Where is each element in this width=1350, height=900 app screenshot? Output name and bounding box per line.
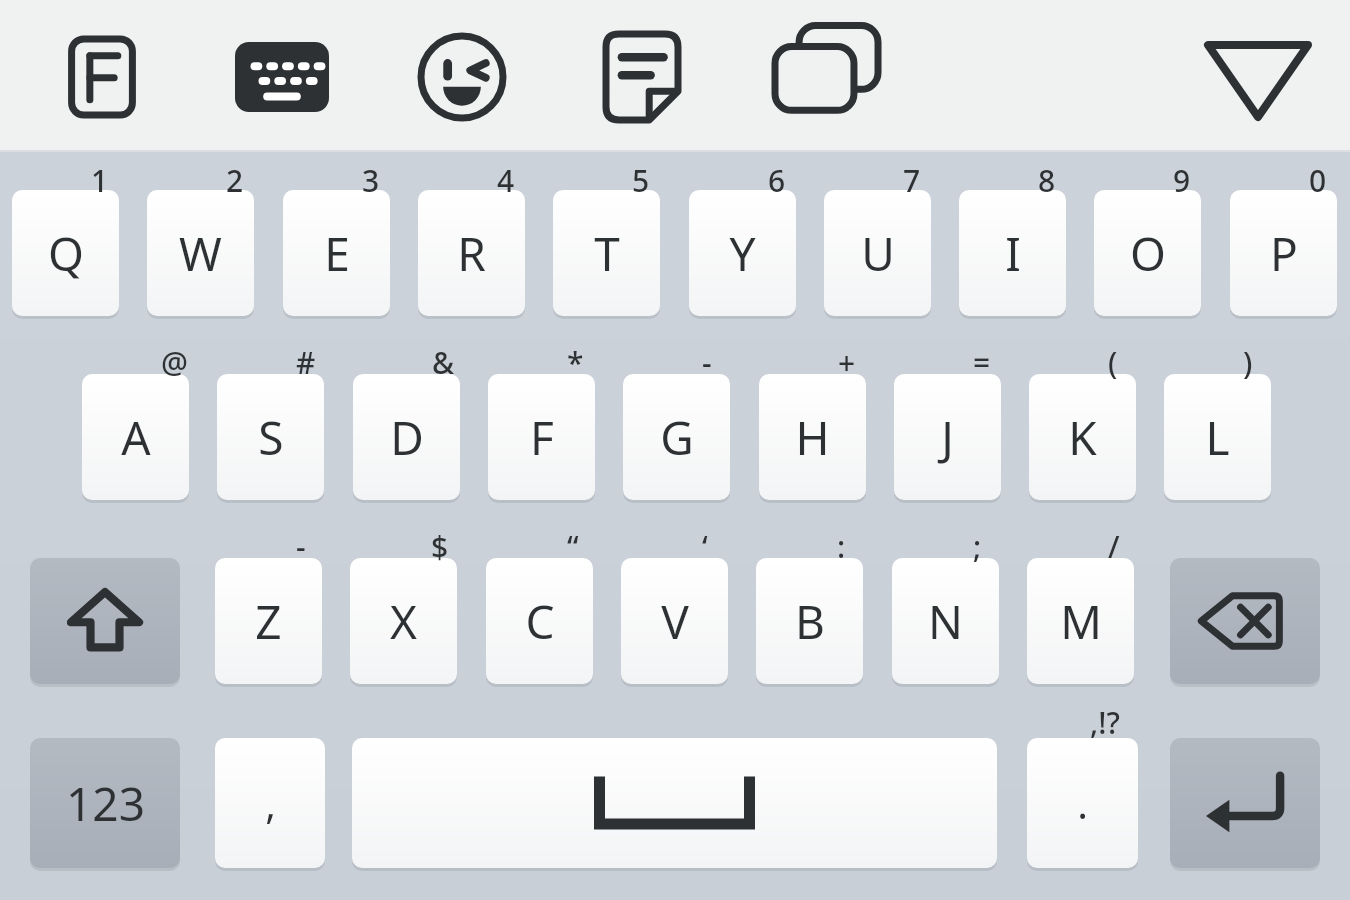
button[interactable]: J xyxy=(894,374,1001,500)
staticText: R xyxy=(457,222,486,285)
button[interactable]: Clipboard xyxy=(762,17,882,137)
button[interactable]: N xyxy=(892,558,999,684)
staticText: X xyxy=(390,590,417,653)
button[interactable]: A xyxy=(82,374,189,500)
button[interactable]: , xyxy=(215,738,325,868)
staticText: & xyxy=(432,342,455,382)
staticText: - xyxy=(296,526,306,566)
staticText: A xyxy=(121,406,151,469)
staticText: 1 xyxy=(91,160,109,200)
button[interactable]: S xyxy=(217,374,324,500)
button[interactable]: Q xyxy=(12,190,119,316)
button[interactable]: M xyxy=(1027,558,1134,684)
staticText: D xyxy=(390,406,424,469)
staticText: C xyxy=(525,590,555,653)
staticText: F xyxy=(530,406,554,469)
staticText: 6 xyxy=(768,160,786,200)
button[interactable]: L xyxy=(1164,374,1271,500)
button[interactable]: Font xyxy=(42,17,162,137)
staticText: M xyxy=(1060,590,1102,653)
staticText: G xyxy=(660,406,694,469)
staticText: H xyxy=(795,406,830,469)
button[interactable]: D xyxy=(353,374,460,500)
button[interactable]: Enter xyxy=(1170,738,1320,868)
staticText: , xyxy=(265,776,276,830)
button[interactable]: G xyxy=(623,374,730,500)
staticText: : xyxy=(837,526,846,566)
staticText: 5 xyxy=(632,160,650,200)
staticText: ‘ xyxy=(702,526,708,566)
staticText: ( xyxy=(1108,342,1118,382)
button[interactable]: P xyxy=(1230,190,1337,316)
button[interactable]: Y xyxy=(689,190,796,316)
button[interactable]: Keyboard xyxy=(222,17,342,137)
button[interactable]: Backspace xyxy=(1170,558,1320,684)
staticText: O xyxy=(1130,222,1166,285)
staticText: J xyxy=(941,406,954,469)
button[interactable]: X xyxy=(350,558,457,684)
button[interactable]: C xyxy=(486,558,593,684)
staticText: U xyxy=(861,222,895,285)
staticText: 4 xyxy=(497,160,515,200)
button[interactable]: Z xyxy=(215,558,322,684)
button[interactable]: R xyxy=(418,190,525,316)
button[interactable]: V xyxy=(621,558,728,684)
staticText: = xyxy=(973,342,991,382)
staticText: S xyxy=(258,406,284,469)
staticText: K xyxy=(1068,406,1097,469)
button[interactable]: F xyxy=(488,374,595,500)
staticText: L xyxy=(1205,406,1230,469)
staticText: . xyxy=(1077,776,1088,830)
button[interactable]: E xyxy=(283,190,390,316)
button[interactable]: . xyxy=(1027,738,1138,868)
staticText: ,!? xyxy=(1090,702,1120,742)
staticText: 2 xyxy=(226,160,244,200)
staticText: I xyxy=(1005,222,1021,285)
staticText: Y xyxy=(729,222,756,285)
staticText: 8 xyxy=(1038,160,1056,200)
staticText: Q xyxy=(48,222,84,285)
button[interactable]: Space xyxy=(352,738,997,868)
button[interactable]: U xyxy=(824,190,931,316)
staticText: B xyxy=(795,590,825,653)
staticText: Z xyxy=(255,590,282,653)
staticText: P xyxy=(1270,222,1298,285)
button[interactable]: W xyxy=(147,190,254,316)
staticText: ) xyxy=(1243,342,1253,382)
staticText: W xyxy=(179,222,222,285)
button[interactable]: Notes xyxy=(582,17,702,137)
button[interactable]: Hide keyboard xyxy=(1198,17,1318,137)
staticText: 9 xyxy=(1173,160,1191,200)
staticText: + xyxy=(838,342,856,382)
staticText: - xyxy=(702,342,712,382)
button[interactable]: K xyxy=(1029,374,1136,500)
staticText: $ xyxy=(431,526,449,566)
button[interactable]: 123 xyxy=(30,738,180,868)
button[interactable]: B xyxy=(756,558,863,684)
staticText: 123 xyxy=(66,772,145,835)
staticText: / xyxy=(1108,526,1120,566)
button[interactable]: T xyxy=(553,190,660,316)
staticText: # xyxy=(296,342,316,382)
staticText: “ xyxy=(567,526,579,566)
staticText: N xyxy=(928,590,963,653)
staticText: V xyxy=(661,590,689,653)
staticText: 0 xyxy=(1309,160,1327,200)
button[interactable]: I xyxy=(959,190,1066,316)
button[interactable]: O xyxy=(1094,190,1201,316)
button[interactable]: Emoji xyxy=(402,17,522,137)
staticText: 3 xyxy=(362,160,380,200)
staticText: ; xyxy=(973,526,982,566)
staticText: @ xyxy=(161,342,188,382)
button[interactable]: Shift xyxy=(30,558,180,684)
staticText: * xyxy=(567,342,584,382)
staticText: T xyxy=(594,222,620,285)
button[interactable]: H xyxy=(759,374,866,500)
staticText: 7 xyxy=(903,160,921,200)
staticText: E xyxy=(324,222,350,285)
